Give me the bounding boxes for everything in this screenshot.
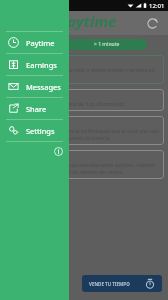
button[interactable]: > 1 minute (67, 39, 147, 50)
staticText: Regala un objeto muy especial en Wallapo… (8, 128, 160, 142)
staticText: LOS MAS VISTOS (8, 58, 49, 65)
staticText: VENDE TU TIEMPO (58, 31, 85, 35)
staticText: Share (26, 104, 47, 114)
staticText: VENDE TU TIEMPO (89, 281, 130, 287)
button[interactable]: CINE (4, 89, 164, 111)
staticText: 12:01 (149, 2, 165, 10)
button[interactable]: Info (52, 145, 64, 157)
button[interactable]: Paytime (0, 32, 69, 53)
button[interactable]: NUEVA APP (4, 116, 164, 145)
staticText: NUEVA APP (8, 119, 37, 126)
staticText: Settings (26, 126, 55, 136)
staticText: Descubre y conoce la historia de "Los úl… (8, 101, 128, 108)
button[interactable]: Refresh (142, 13, 162, 33)
staticText: Paytime (26, 38, 55, 48)
button[interactable]: Messages (0, 76, 69, 97)
staticText: Earnings (26, 60, 57, 70)
staticText: Paytime (58, 11, 117, 31)
staticText: Messages (26, 82, 61, 92)
staticText: CINE (8, 92, 21, 99)
button[interactable]: LOS MAS VISTOS (4, 55, 164, 84)
staticText: El bailarín millonario que arruinó a med… (8, 67, 160, 81)
button[interactable]: Settings (0, 120, 69, 141)
staticText: Rápida y útil de llevar tus cupones desc… (8, 162, 160, 176)
button[interactable]: Earnings (0, 54, 69, 75)
staticText: > 1 minute (94, 41, 120, 48)
button[interactable]: Share (0, 98, 69, 119)
button[interactable]: VENDE TU TIEMPO (82, 275, 162, 292)
button[interactable]: LA APP DEL DÍA (4, 150, 164, 179)
